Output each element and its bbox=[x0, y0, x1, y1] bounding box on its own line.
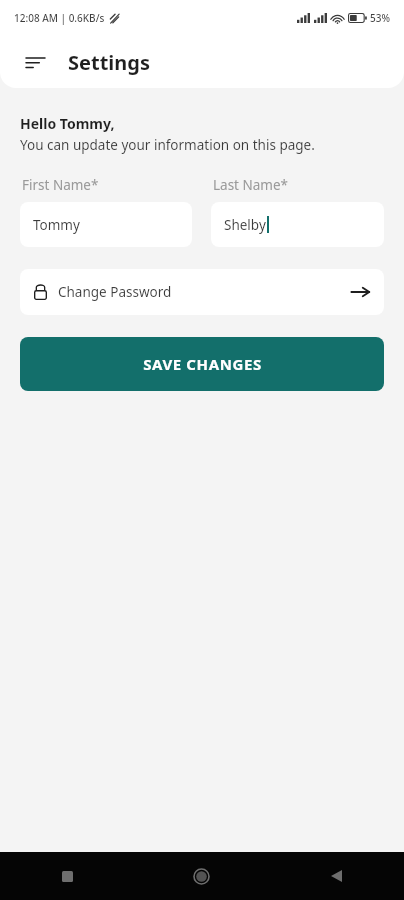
button[interactable]: Change Password bbox=[20, 269, 384, 315]
button[interactable]: SAVE CHANGES bbox=[20, 337, 384, 391]
staticText: Change Password bbox=[58, 283, 172, 301]
staticText: Hello Tommy, bbox=[20, 114, 115, 133]
staticText: Shelby bbox=[224, 216, 266, 234]
staticText: First Name* bbox=[22, 176, 99, 194]
button[interactable]: Open navigation menu bbox=[18, 45, 52, 79]
staticText: 12:08 AM | 0.6KB/s bbox=[14, 11, 105, 25]
staticText: 53% bbox=[370, 11, 390, 25]
button[interactable]: Tommy bbox=[20, 202, 192, 247]
staticText: Last Name* bbox=[213, 176, 289, 194]
button[interactable]: Recent apps bbox=[0, 852, 134, 900]
button[interactable]: Home bbox=[134, 852, 269, 900]
staticText: Tommy bbox=[33, 216, 80, 234]
staticText: You can update your information on this … bbox=[20, 136, 315, 154]
button[interactable]: Shelby bbox=[211, 202, 384, 247]
staticText: Settings bbox=[68, 49, 150, 76]
button[interactable]: Back bbox=[269, 852, 404, 900]
staticText: SAVE CHANGES bbox=[143, 354, 262, 374]
